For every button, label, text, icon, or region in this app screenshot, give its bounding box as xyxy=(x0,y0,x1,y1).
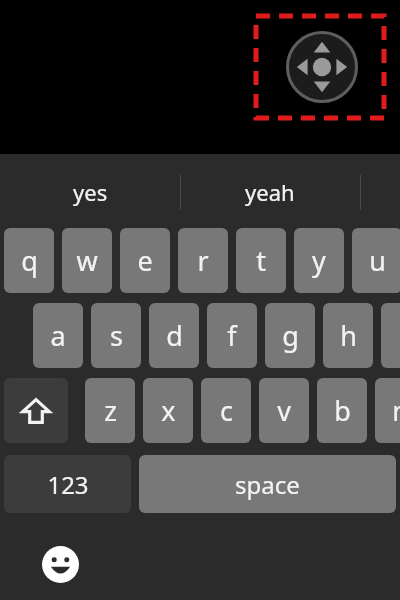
button[interactable]: c xyxy=(201,378,251,443)
staticText: f xyxy=(227,317,237,354)
staticText: b xyxy=(334,392,351,429)
staticText: d xyxy=(166,317,183,354)
button[interactable]: s xyxy=(91,303,141,368)
button[interactable]: v xyxy=(259,378,309,443)
staticText: a xyxy=(50,317,66,354)
button[interactable]: z xyxy=(85,378,135,443)
staticText: h xyxy=(340,317,357,354)
staticText: yeah xyxy=(245,177,295,207)
button[interactable]: f xyxy=(207,303,257,368)
staticText: 123 xyxy=(47,468,89,501)
button[interactable]: w xyxy=(62,228,112,293)
staticText: w xyxy=(76,242,98,279)
button[interactable]: e xyxy=(120,228,170,293)
staticText: r xyxy=(197,242,209,279)
button[interactable]: n xyxy=(375,378,400,443)
button[interactable]: q xyxy=(4,228,54,293)
button[interactable]: g xyxy=(265,303,315,368)
staticText: u xyxy=(369,242,386,279)
button[interactable]: Directional pad xyxy=(285,30,359,104)
staticText: v xyxy=(277,392,291,429)
button[interactable]: d xyxy=(149,303,199,368)
button[interactable]: j xyxy=(381,303,400,368)
staticText: yes xyxy=(73,177,108,207)
staticText: t xyxy=(256,242,266,279)
button[interactable]: 123 xyxy=(4,455,131,513)
button[interactable]: h xyxy=(323,303,373,368)
staticText: n xyxy=(392,392,400,429)
button[interactable]: a xyxy=(33,303,83,368)
staticText: e xyxy=(137,242,153,279)
button[interactable]: y xyxy=(294,228,344,293)
staticText: y xyxy=(312,242,326,279)
staticText: space xyxy=(235,468,300,501)
button[interactable]: t xyxy=(236,228,286,293)
button[interactable]: Emoji xyxy=(30,535,90,593)
button[interactable]: space xyxy=(139,455,396,513)
staticText: q xyxy=(21,242,38,279)
staticText: x xyxy=(161,392,176,429)
staticText: z xyxy=(104,392,117,429)
button[interactable]: r xyxy=(178,228,228,293)
staticText: g xyxy=(282,317,299,354)
button[interactable]: u xyxy=(352,228,400,293)
staticText: s xyxy=(110,317,123,354)
button[interactable]: yeah xyxy=(190,170,350,214)
button[interactable]: b xyxy=(317,378,367,443)
button[interactable]: yes xyxy=(10,170,170,214)
button[interactable]: x xyxy=(143,378,193,443)
button[interactable]: Shift xyxy=(4,378,68,443)
staticText: c xyxy=(220,392,233,429)
